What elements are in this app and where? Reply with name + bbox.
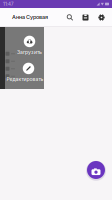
staticText: Загрузить	[17, 49, 42, 55]
button[interactable]: Save	[79, 11, 92, 24]
button[interactable]: Search	[63, 11, 76, 24]
staticText: 11:47	[3, 1, 14, 7]
button[interactable]: Take photo	[85, 159, 106, 180]
button[interactable]: Редактировать	[6, 62, 50, 82]
button[interactable]: Settings	[95, 11, 108, 24]
staticText: Редактировать	[6, 76, 43, 82]
button[interactable]: Загрузить	[7, 35, 51, 55]
staticText: Анна Суровая	[12, 14, 48, 20]
